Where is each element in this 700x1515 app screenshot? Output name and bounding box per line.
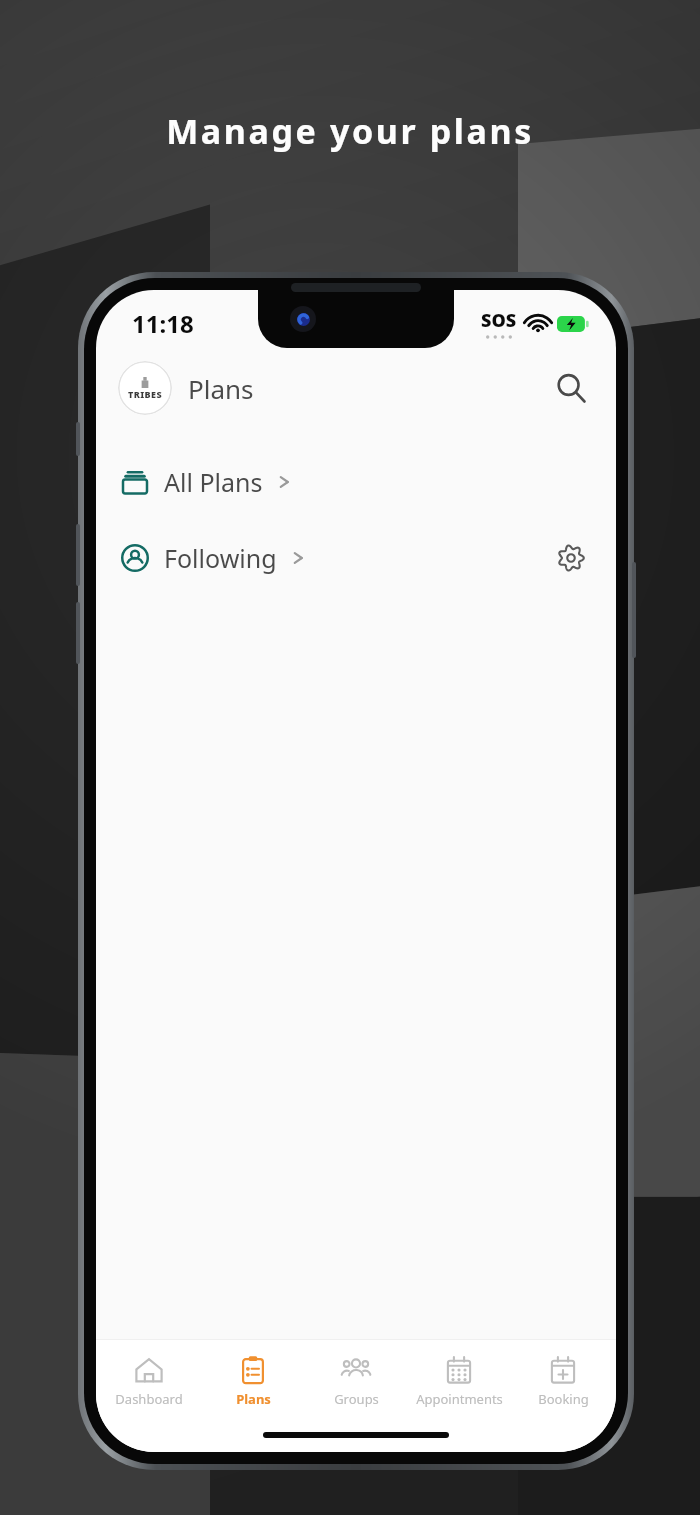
button[interactable]: Dashboard [99,1351,199,1412]
button[interactable]: Plans [203,1351,303,1412]
staticText: Groups [334,1390,379,1408]
button[interactable]: Settings [550,537,592,579]
staticText: Following [164,541,277,575]
button[interactable]: All Plans [96,458,616,506]
button[interactable]: TRIBES [118,361,172,415]
staticText: Dashboard [115,1390,183,1408]
staticText: All Plans [164,465,263,499]
button[interactable]: Following [96,534,616,582]
button[interactable]: Search [548,365,594,411]
staticText: 11:18 [132,307,194,340]
staticText: Booking [538,1390,589,1408]
button[interactable]: Groups [306,1351,406,1412]
button[interactable]: Booking [513,1351,613,1412]
staticText: Plans [236,1390,271,1408]
button[interactable]: Appointments [409,1351,509,1412]
staticText: TRIBES [128,388,162,400]
staticText: SOS [481,308,517,333]
staticText: Plans [188,371,254,406]
staticText: Appointments [416,1390,503,1408]
staticText: Manage your plans [166,108,534,154]
